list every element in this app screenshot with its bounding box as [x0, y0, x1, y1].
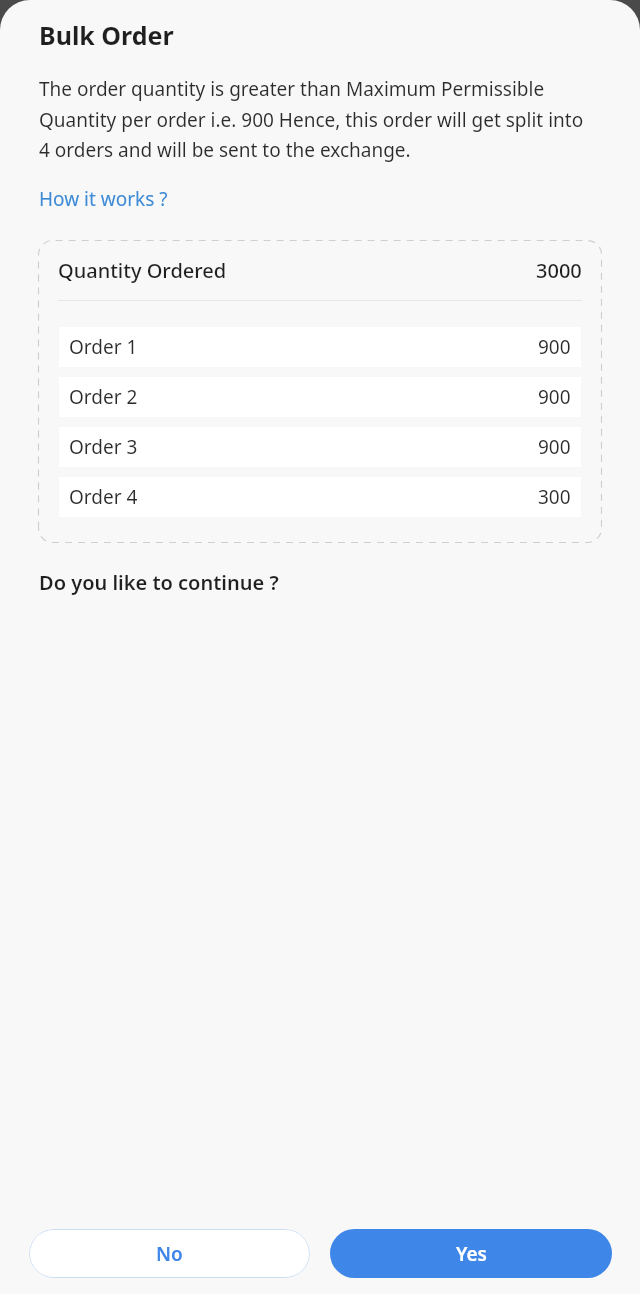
staticText: 300 — [538, 484, 571, 510]
staticText: Yes — [456, 1241, 487, 1267]
staticText: The order quantity is greater than Maxim… — [39, 76, 598, 162]
staticText: Order 1 — [69, 334, 138, 360]
staticText: Order 2 — [69, 384, 138, 410]
staticText: Bulk Order — [39, 18, 174, 52]
staticText: Quantity Ordered — [58, 257, 227, 284]
button[interactable]: Yes — [330, 1229, 612, 1278]
staticText: 900 — [538, 434, 571, 460]
button[interactable]: How it works ? — [39, 186, 168, 212]
button[interactable]: No — [29, 1229, 310, 1278]
staticText: 900 — [538, 334, 571, 360]
staticText: 3000 — [536, 257, 582, 284]
button[interactable]: Order 1 — [69, 327, 571, 367]
staticText: Order 3 — [69, 434, 138, 460]
staticText: Order 4 — [69, 484, 138, 510]
staticText: How it works ? — [39, 186, 168, 212]
button[interactable]: Order 4 — [69, 477, 571, 517]
button[interactable]: Order 2 — [69, 377, 571, 417]
button[interactable]: Order 3 — [69, 427, 571, 467]
staticText: Do you like to continue ? — [39, 569, 279, 596]
staticText: 900 — [538, 384, 571, 410]
staticText: No — [156, 1241, 183, 1267]
